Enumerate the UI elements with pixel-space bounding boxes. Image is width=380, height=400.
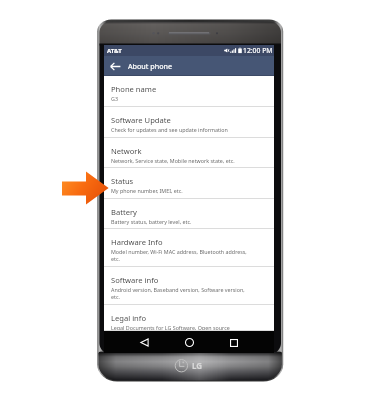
staticText: Software Update (111, 115, 171, 125)
staticText: Hardware Info (111, 237, 163, 247)
button[interactable]: Status (104, 168, 274, 199)
button[interactable]: Back (133, 332, 155, 353)
staticText: Network (111, 146, 142, 156)
staticText: AT&T (107, 47, 122, 55)
staticText: Check for updates and see update informa… (111, 126, 228, 133)
button[interactable]: Software Update (104, 107, 274, 138)
staticText: Software info (111, 275, 159, 285)
staticText: Android version, Baseband version, Softw… (111, 286, 245, 293)
button[interactable]: Hardware Info (104, 229, 274, 267)
button[interactable]: Phone name (104, 76, 274, 107)
staticText: Battery (111, 207, 137, 217)
staticText: etc. (111, 255, 120, 262)
staticText: My phone number, IMEI, etc. (111, 187, 183, 194)
staticText: Legal info (111, 313, 146, 323)
staticText: Network, Service state, Mobile network s… (111, 157, 235, 164)
staticText: Legal Documents for LG Software, Open so… (111, 324, 230, 331)
button[interactable]: Network (104, 138, 274, 168)
staticText: Phone name (111, 84, 157, 94)
staticText: 12:00 PM (243, 46, 273, 55)
button[interactable]: Battery (104, 199, 274, 229)
staticText: Battery status, battery level, etc. (111, 218, 192, 225)
staticText: About phone (128, 61, 172, 71)
staticText: G3 (111, 95, 118, 102)
staticText: etc. (111, 293, 120, 300)
button[interactable]: Legal info (104, 305, 274, 331)
staticText: Status (111, 176, 134, 186)
button[interactable]: Software info (104, 267, 274, 305)
staticText: Model number, Wi-Fi MAC address, Bluetoo… (111, 248, 247, 255)
button[interactable]: Home (178, 332, 200, 353)
button[interactable]: Back (104, 56, 126, 76)
button[interactable]: Recents (223, 332, 245, 353)
staticText: LG (192, 360, 203, 371)
